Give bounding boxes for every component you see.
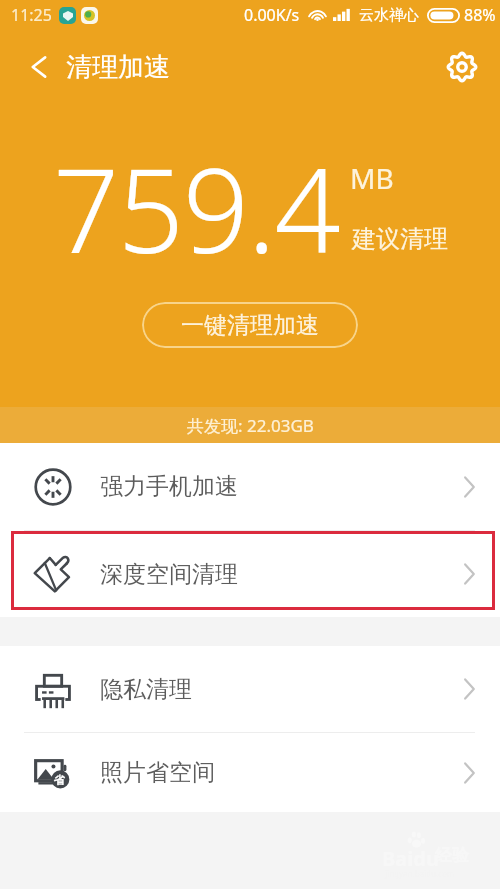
button[interactable]: 一键清理加速 — [142, 302, 358, 348]
staticText: 清理加速 — [66, 51, 170, 84]
staticText: 11:25 — [11, 4, 52, 26]
staticText: 云水禅心 — [359, 6, 419, 25]
staticText: 一键清理加速 — [181, 311, 319, 340]
button[interactable]: 省 — [0, 733, 500, 812]
staticText: 0.00K/s — [244, 4, 300, 26]
staticText: 共发现: 22.03GB — [187, 414, 314, 437]
staticText: 759.4 — [53, 129, 340, 287]
staticText: 88% — [464, 4, 496, 26]
button[interactable]: Back — [18, 45, 62, 89]
staticText: 隐私清理 — [100, 675, 192, 704]
staticText: 建议清理 — [352, 224, 448, 254]
button[interactable]: 隐私清理 — [0, 646, 500, 732]
button[interactable]: Settings — [440, 45, 484, 89]
button[interactable]: 深度空间清理 — [0, 531, 500, 617]
staticText: 深度空间清理 — [100, 560, 238, 589]
staticText: 省 — [54, 773, 65, 787]
staticText: MB — [350, 159, 394, 197]
staticText: 强力手机加速 — [100, 472, 238, 501]
staticText: 照片省空间 — [100, 758, 215, 787]
button[interactable]: 强力手机加速 — [0, 443, 500, 530]
